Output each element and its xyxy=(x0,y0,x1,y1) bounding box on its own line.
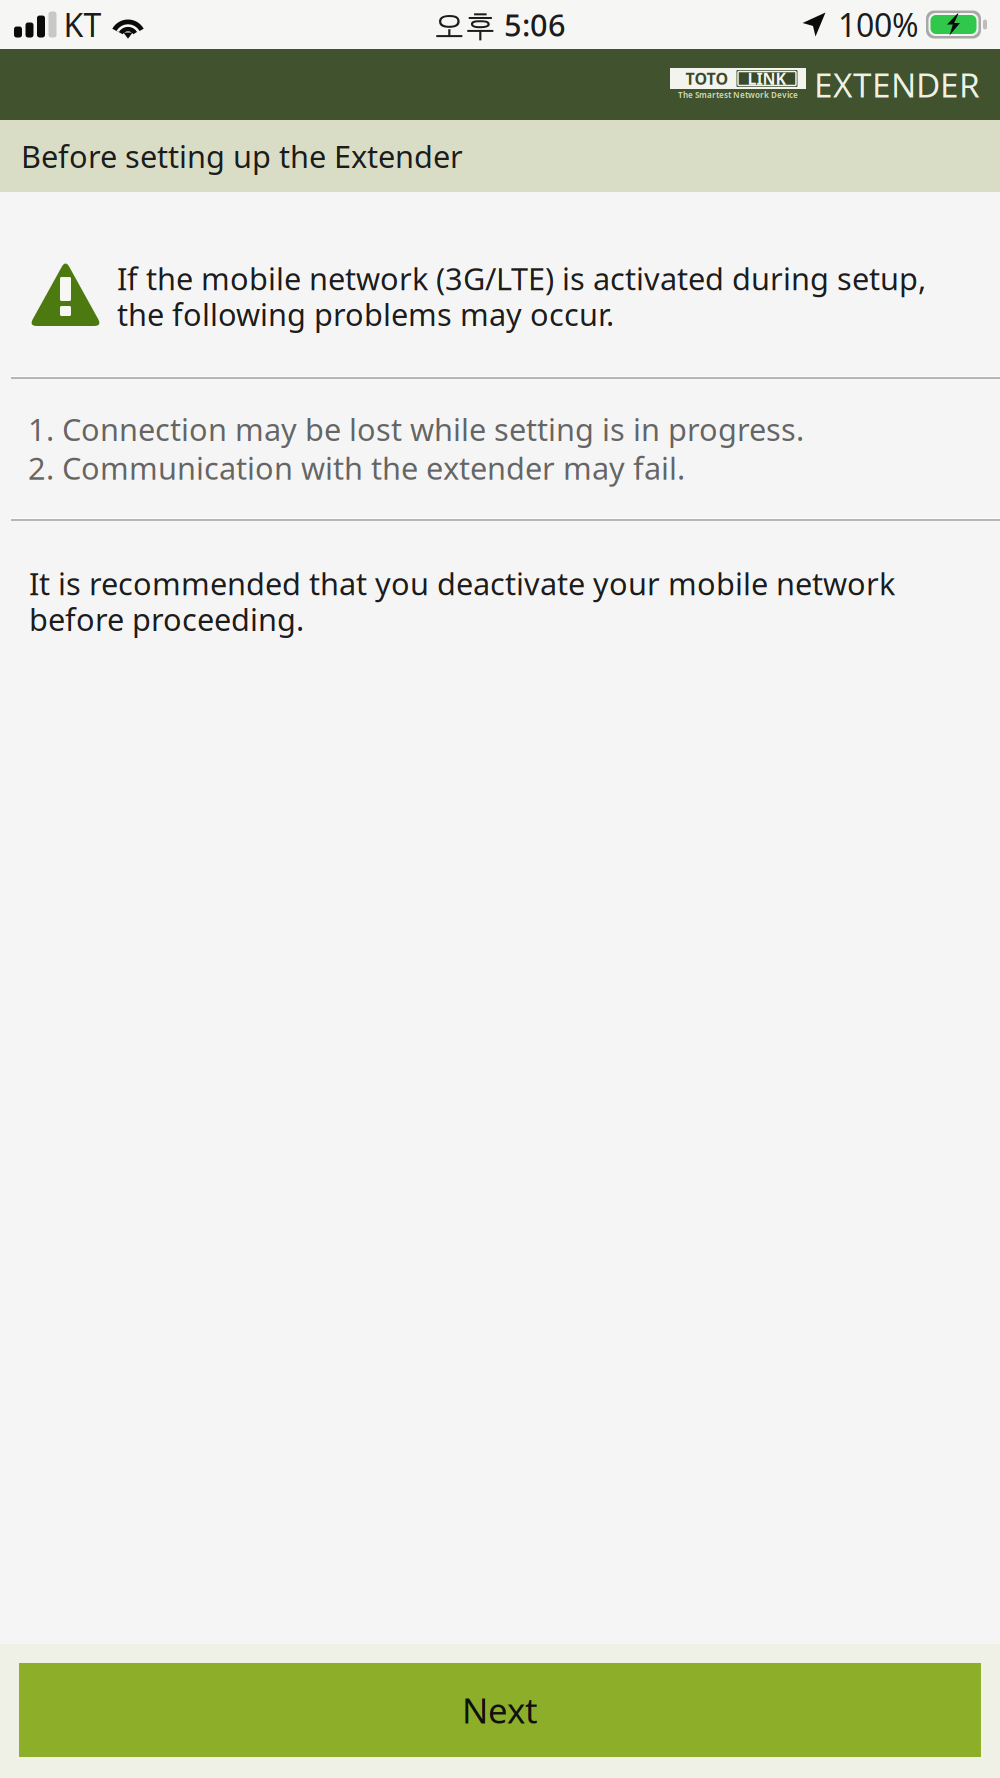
staticText: KT xyxy=(63,3,101,46)
staticText: 100% xyxy=(838,3,919,46)
staticText: If the mobile network (3G/LTE) is activa… xyxy=(117,258,926,334)
staticText: 오후 5:06 xyxy=(434,4,566,45)
staticText: Before setting up the Extender xyxy=(21,136,463,176)
staticText: Next xyxy=(462,1687,538,1733)
staticText: The Smartest Network Device xyxy=(678,90,798,100)
staticText: It is recommended that you deactivate yo… xyxy=(29,563,895,639)
staticText: 1. Connection may be lost while setting … xyxy=(28,409,804,449)
staticText: TOTO xyxy=(685,68,728,89)
button[interactable]: Next xyxy=(19,1663,981,1757)
staticText: EXTENDER xyxy=(814,62,980,107)
staticText: 2. Communication with the extender may f… xyxy=(28,447,685,488)
staticText: LINK xyxy=(747,68,786,89)
